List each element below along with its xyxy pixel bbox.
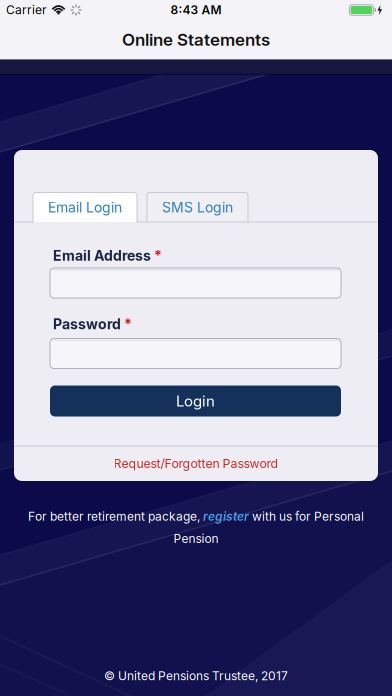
staticText: Pension: [173, 531, 218, 546]
staticText: *: [124, 316, 132, 332]
staticText: Request/Forgotten Password: [113, 456, 278, 471]
button[interactable]: Email Login: [33, 192, 137, 222]
button[interactable]: Request/Forgotten Password: [113, 456, 278, 471]
staticText: Email Address: [53, 247, 154, 264]
button[interactable]: [50, 338, 341, 368]
button[interactable]: Online Statements: [122, 29, 270, 50]
staticText: with us for Personal: [249, 509, 364, 523]
button[interactable]: register: [203, 509, 249, 523]
button[interactable]: [50, 268, 341, 298]
staticText: SMS Login: [162, 199, 233, 216]
staticText: Carrier: [6, 3, 47, 17]
staticText: Email Login: [48, 199, 122, 216]
button[interactable]: Login: [50, 385, 341, 416]
staticText: *: [154, 247, 162, 264]
staticText: Online Statements: [122, 29, 270, 50]
staticText: Login: [176, 392, 215, 410]
staticText: register: [203, 509, 249, 523]
staticText: For better retirement package,: [28, 509, 203, 523]
staticText: © United Pensions Trustee, 2017: [104, 669, 288, 683]
staticText: 8:43 AM: [170, 3, 221, 17]
staticText: Password: [53, 316, 124, 332]
button[interactable]: SMS Login: [147, 192, 248, 222]
